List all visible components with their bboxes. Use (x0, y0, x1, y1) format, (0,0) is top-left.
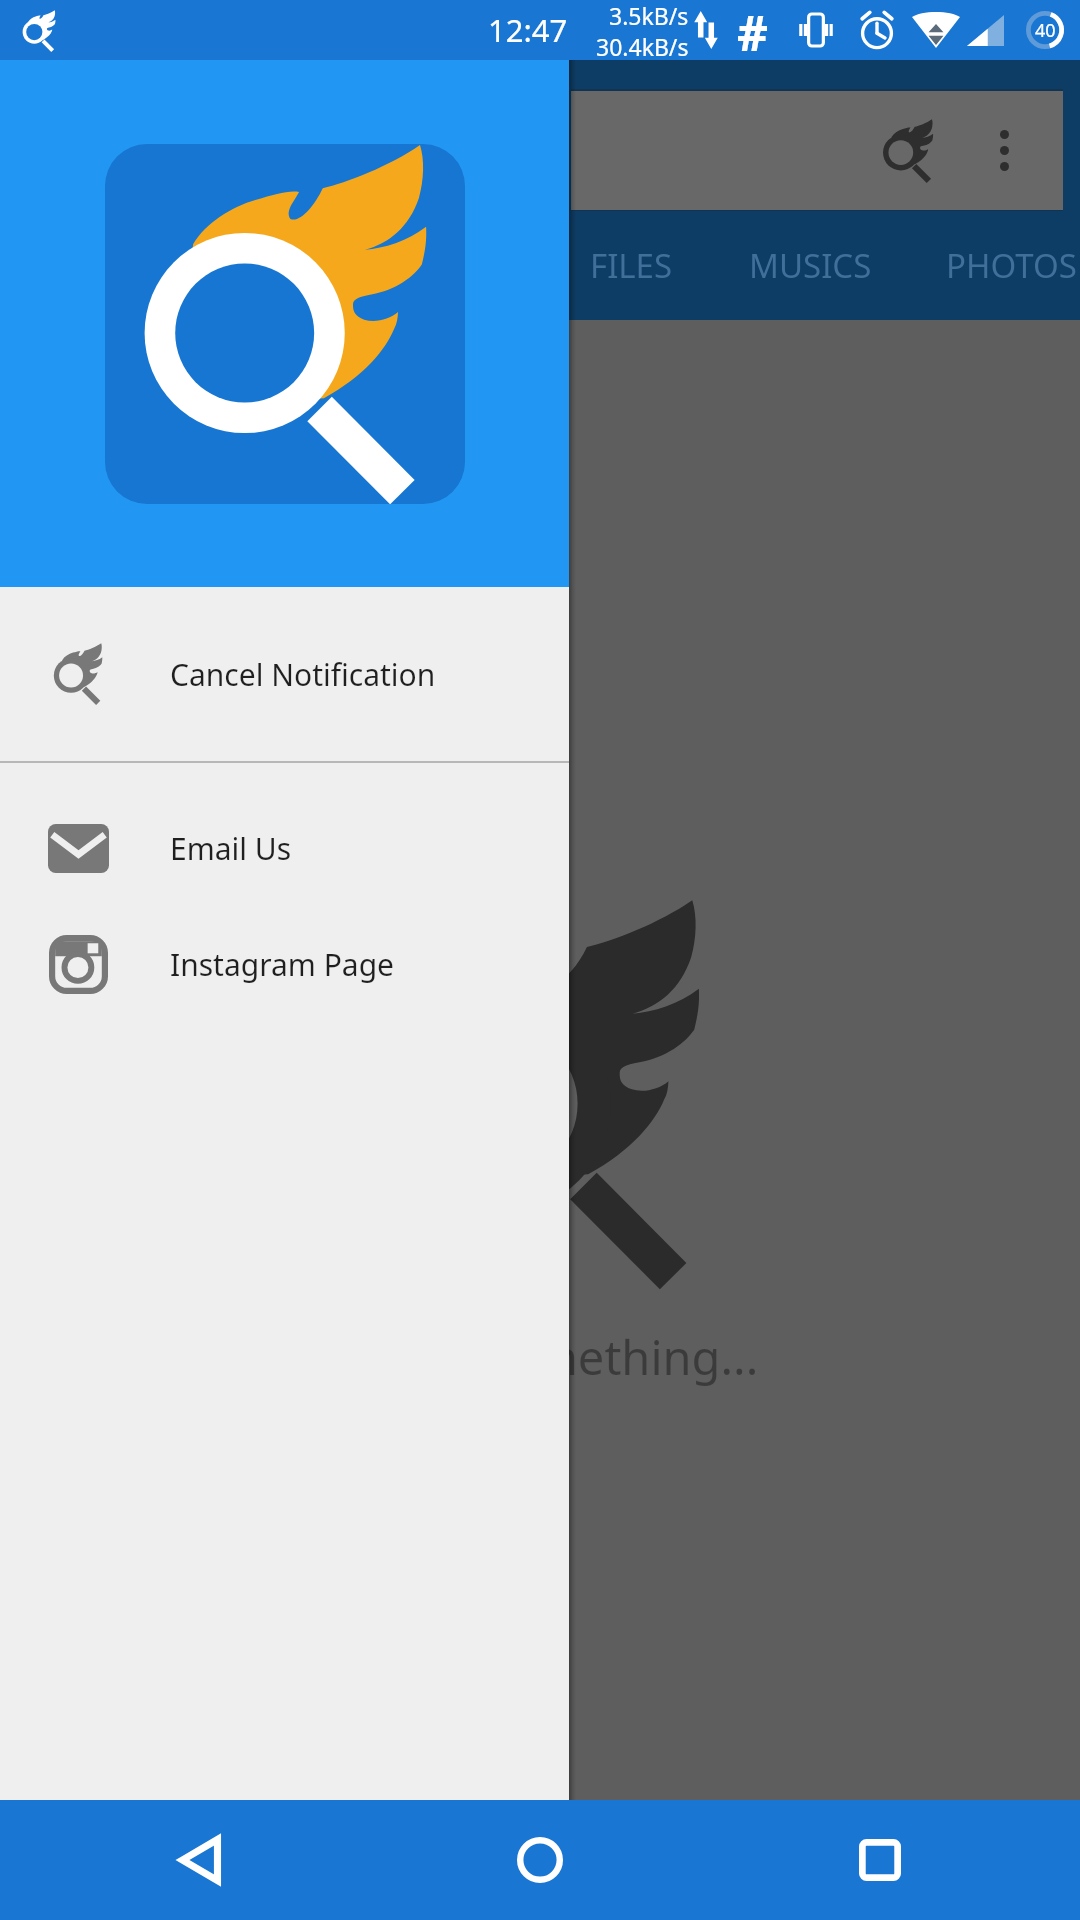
staticText: Instagram Page (170, 944, 395, 985)
staticText: PHOTOS (946, 243, 1077, 288)
button[interactable]: Back (152, 1812, 248, 1908)
button[interactable]: More options (967, 91, 1041, 210)
button[interactable]: MUSICS (729, 195, 892, 335)
button[interactable]: Instagram Page (0, 906, 569, 1022)
staticText: 12:47 (488, 9, 568, 51)
button[interactable]: FILES (567, 195, 695, 335)
button[interactable]: Search (571, 91, 1063, 210)
staticText: # (737, 0, 769, 60)
button[interactable]: Home (492, 1812, 588, 1908)
staticText: Search something... (322, 1325, 759, 1389)
staticText: 30.4kB/s (596, 31, 689, 60)
button[interactable]: Search (853, 96, 963, 206)
button[interactable]: Email Us (0, 790, 569, 906)
staticText: 3.5kB/s (609, 0, 689, 31)
button[interactable]: Recents (832, 1812, 928, 1908)
staticText: 40 (1035, 18, 1056, 43)
staticText: FILES (590, 243, 673, 288)
button[interactable]: Cancel Notification (0, 587, 569, 761)
staticText: Email Us (170, 828, 292, 869)
staticText: MUSICS (749, 243, 872, 288)
button[interactable]: PHOTOS (930, 195, 1080, 335)
staticText: Cancel Notification (170, 654, 436, 695)
